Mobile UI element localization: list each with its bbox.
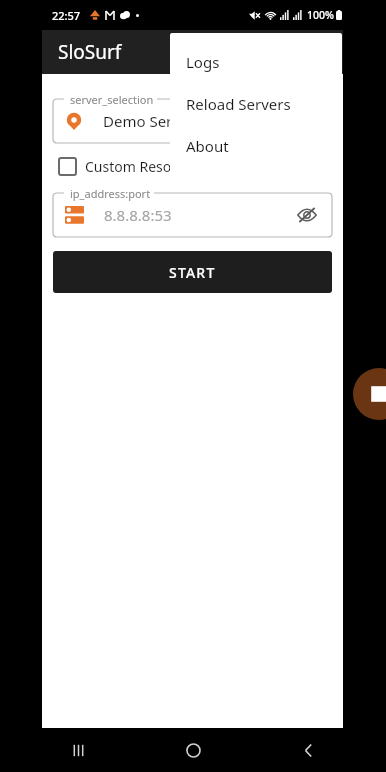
staticText: 100% [307, 8, 334, 22]
button[interactable]: Custom Resolver [55, 153, 200, 180]
button[interactable]: Home [173, 730, 213, 770]
staticText: 8.8.8.8:53 [104, 205, 292, 225]
staticText: server_selection [70, 92, 154, 107]
staticText: START [169, 263, 216, 282]
staticText: ip_address:port [70, 186, 151, 201]
button[interactable]: Toggle visibility [292, 200, 322, 230]
button[interactable]: About [170, 125, 342, 167]
staticText: 22:57 [52, 8, 81, 23]
staticText: SloSurf [58, 39, 122, 65]
staticText: Demo Server [103, 111, 195, 131]
button[interactable]: Back [288, 730, 328, 770]
button[interactable]: Recents [58, 730, 98, 770]
button[interactable]: START [53, 251, 332, 293]
staticText: Custom Resolver [85, 157, 196, 176]
button[interactable]: Floating shortcut [353, 368, 386, 420]
staticText: Reload Servers [186, 94, 291, 114]
staticText: About [186, 136, 229, 156]
button[interactable]: Logs [170, 41, 342, 83]
staticText: Logs [186, 52, 220, 72]
button[interactable]: Reload Servers [170, 83, 342, 125]
